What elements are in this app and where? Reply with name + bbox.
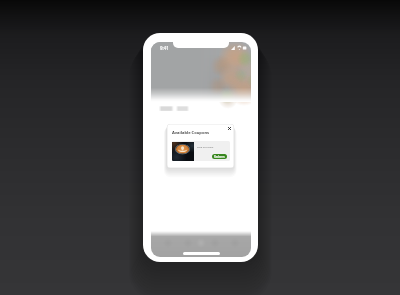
button[interactable]: Redeem [212,154,227,159]
staticText: Free hot drink [197,145,214,148]
staticText: Redeem [214,155,225,159]
staticText: 9:41 [160,45,169,51]
button[interactable]: Close [226,125,233,132]
button[interactable]: Free hot drink [172,141,230,161]
staticText: Available Coupons [172,130,210,136]
